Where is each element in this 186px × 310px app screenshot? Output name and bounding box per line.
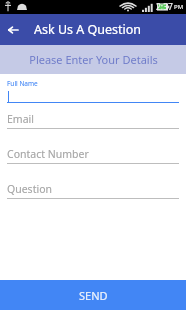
- staticText: Please Enter Your Details: [29, 52, 158, 67]
- staticText: Full Name: [7, 79, 38, 88]
- button[interactable]: Question: [0, 179, 186, 199]
- button[interactable]: Contact Number: [0, 144, 186, 164]
- staticText: 2:37: [156, 1, 173, 13]
- button[interactable]: Email: [0, 109, 186, 129]
- staticText: Contact Number: [7, 147, 89, 161]
- staticText: Ask Us A Question: [34, 21, 142, 38]
- staticText: Question: [7, 182, 52, 196]
- button[interactable]: Full Name: [0, 75, 186, 103]
- button[interactable]: SEND: [0, 280, 186, 310]
- staticText: PM: [174, 3, 184, 11]
- staticText: Email: [7, 112, 34, 126]
- button[interactable]: Back: [0, 17, 26, 43]
- staticText: SEND: [79, 288, 108, 303]
